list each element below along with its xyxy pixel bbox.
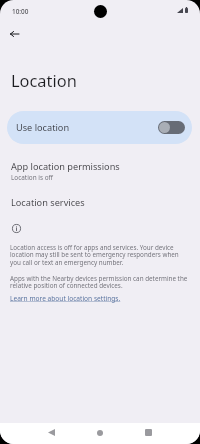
staticText: Location is off [11,173,53,182]
button[interactable]: App location permissions [0,157,200,186]
button[interactable]: Back [3,23,25,45]
staticText: Location access is off for apps and serv… [10,243,190,267]
button[interactable]: Learn more about location settings. [10,294,121,303]
staticText: Learn more about location settings. [10,294,121,303]
button[interactable]: Use location [7,111,192,144]
button[interactable]: Back [38,422,64,443]
staticText: Apps with the Nearby devices permission … [10,274,190,290]
staticText: Location [11,69,77,91]
staticText: 10:00 [12,7,29,16]
staticText: App location permissions [11,160,120,173]
staticText: Use location [16,121,70,134]
staticText: Location services [11,196,85,209]
button[interactable]: Recent apps [135,422,161,443]
button[interactable]: Home [87,422,113,443]
